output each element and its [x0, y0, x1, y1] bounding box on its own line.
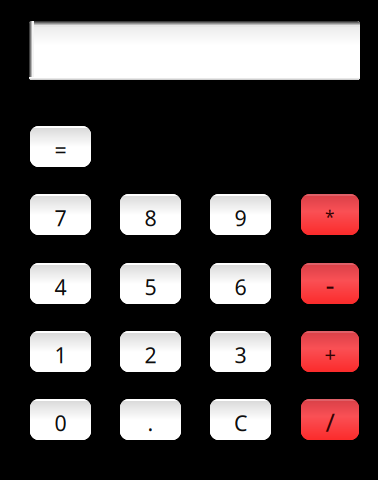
button[interactable]: / [301, 399, 359, 440]
button[interactable]: 8 [120, 194, 181, 235]
button[interactable]: 0 [30, 399, 91, 440]
button[interactable]: 1 [30, 331, 91, 372]
button[interactable]: 2 [120, 331, 181, 372]
staticText: * [325, 205, 335, 228]
button[interactable]: 7 [30, 194, 91, 235]
button[interactable]: 9 [210, 194, 271, 235]
staticText: 9 [234, 204, 246, 232]
staticText: 1 [54, 341, 66, 369]
button[interactable]: * [301, 194, 359, 235]
button[interactable]: . [120, 399, 181, 440]
button[interactable]: C [210, 399, 271, 440]
staticText: C [234, 409, 247, 437]
staticText: 5 [144, 273, 156, 301]
staticText: 3 [234, 341, 246, 369]
staticText: 0 [54, 409, 66, 437]
staticText: 8 [144, 204, 156, 232]
button[interactable]: 5 [120, 263, 181, 304]
button[interactable]: - [301, 263, 359, 304]
staticText: . [147, 409, 153, 437]
staticText: 6 [234, 273, 246, 301]
button[interactable]: 4 [30, 263, 91, 304]
staticText: - [325, 265, 334, 303]
staticText: 2 [144, 341, 156, 369]
staticText: / [325, 405, 334, 439]
button[interactable]: 3 [210, 331, 271, 372]
staticText: 7 [54, 204, 66, 232]
staticText: = [54, 136, 66, 164]
button[interactable]: + [301, 331, 359, 372]
button[interactable]: = [30, 126, 91, 167]
staticText: + [324, 341, 335, 367]
staticText: 4 [54, 273, 66, 301]
button[interactable]: 6 [210, 263, 271, 304]
